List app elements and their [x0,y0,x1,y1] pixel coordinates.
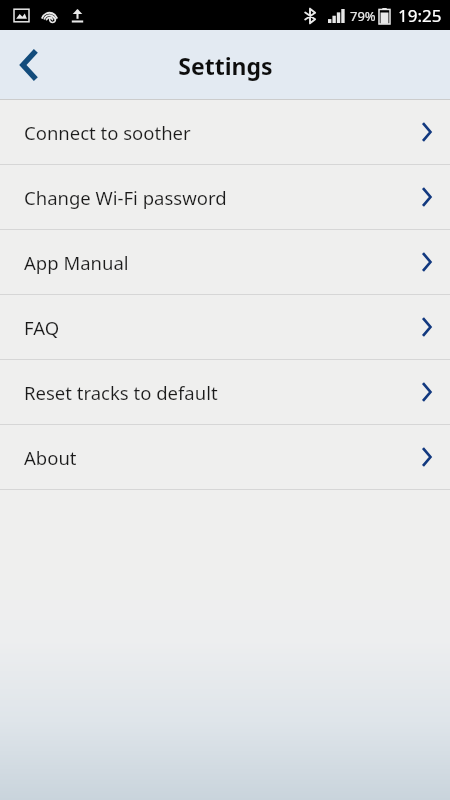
staticText: 79% [350,7,376,25]
staticText: Reset tracks to default [24,380,218,405]
button[interactable]: Change Wi-Fi password [0,165,450,229]
staticText: 19:25 [398,4,442,27]
button[interactable]: Back [0,30,58,100]
button[interactable]: Reset tracks to default [0,360,450,424]
staticText: Settings [178,50,273,81]
staticText: FAQ [24,315,60,340]
button[interactable]: Connect to soother [0,100,450,164]
button[interactable]: App Manual [0,230,450,294]
button[interactable]: FAQ [0,295,450,359]
staticText: Change Wi-Fi password [24,185,227,210]
staticText: About [24,445,77,470]
staticText: App Manual [24,250,129,275]
staticText: Connect to soother [24,120,191,145]
button[interactable]: About [0,425,450,489]
